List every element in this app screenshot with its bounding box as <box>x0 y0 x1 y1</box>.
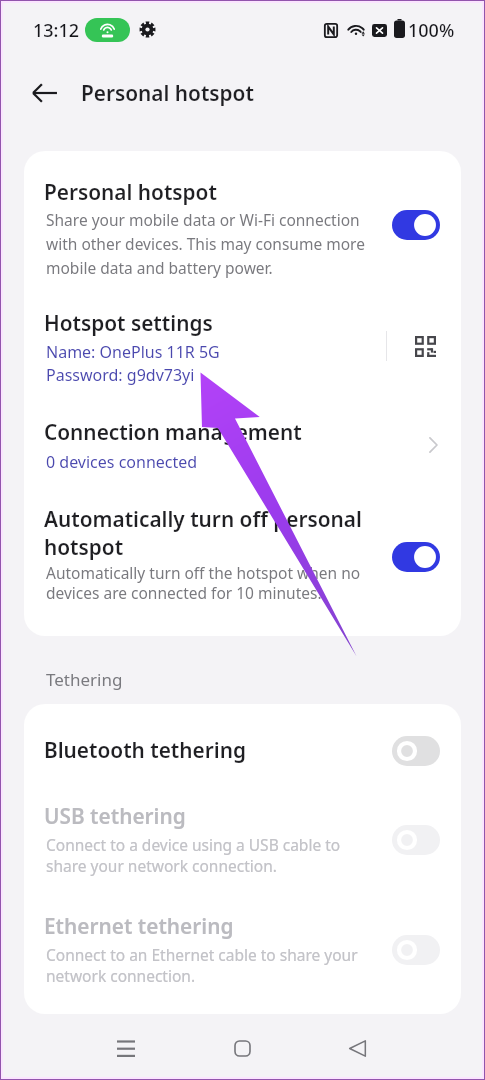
button[interactable]: Toggle <box>392 542 440 572</box>
button[interactable]: Toggle <box>392 935 440 965</box>
staticText: Bluetooth tethering <box>44 736 246 764</box>
staticText: Personal hotspot <box>81 79 254 107</box>
staticText: 13:12 <box>33 18 80 43</box>
staticText: Connect to a device using a USB cable to… <box>46 834 364 877</box>
staticText: Name: OnePlus 11R 5G <box>46 341 220 363</box>
staticText: Personal hotspot <box>44 178 217 206</box>
staticText: 0 devices connected <box>46 451 198 473</box>
staticText: USB tethering <box>44 802 186 830</box>
button[interactable]: Share hotspot QR code <box>403 324 447 368</box>
button[interactable]: Toggle <box>392 736 440 766</box>
staticText: Tethering <box>46 668 123 691</box>
button[interactable]: Home <box>216 1022 268 1074</box>
button[interactable]: Back <box>331 1022 383 1074</box>
staticText: Ethernet tethering <box>44 912 234 940</box>
staticText: Automatically turn off the hotspot when … <box>46 562 364 604</box>
staticText: 100% <box>408 18 455 43</box>
button[interactable]: Recent apps <box>100 1022 152 1074</box>
staticText: Connection management <box>44 418 302 446</box>
staticText: Password: g9dv73yi <box>46 364 195 386</box>
button[interactable]: Toggle <box>392 210 440 240</box>
staticText: Connect to an Ethernet cable to share yo… <box>46 944 364 987</box>
staticText: Share your mobile data or Wi-Fi connecti… <box>46 208 372 280</box>
staticText: Hotspot settings <box>44 309 213 337</box>
button[interactable]: Toggle <box>392 825 440 855</box>
staticText: Automatically turn off personal hotspot <box>44 505 378 561</box>
button[interactable]: Back <box>28 76 62 110</box>
